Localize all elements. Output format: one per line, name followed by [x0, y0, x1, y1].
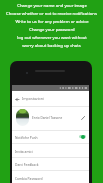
staticText: Choose whether or not to receive notific…: [6, 11, 97, 17]
button[interactable]: Invita amici: [12, 144, 89, 157]
button[interactable]: Cambia Password: [12, 171, 89, 183]
button[interactable]: Toggle push notifications: [78, 134, 86, 139]
staticText: Invita amici: [15, 149, 33, 153]
staticText: Impostazioni: [22, 96, 44, 101]
button[interactable]: Back: [13, 95, 21, 103]
staticText: log out whenever you want without: [17, 35, 87, 41]
button[interactable]: Edit profile: [79, 114, 87, 122]
staticText: Enrio Daniel Tassone: [32, 116, 63, 120]
staticText: Change your name and your image: [17, 3, 87, 9]
staticText: Change your password: [29, 27, 75, 33]
staticText: Notifiche Push: [15, 135, 38, 139]
button[interactable]: Darci Feedback: [12, 157, 89, 170]
staticText: Darci Feedback: [15, 162, 39, 166]
staticText: worry about backing up chats: [22, 43, 81, 49]
staticText: Cambia Password: [15, 176, 43, 180]
button[interactable]: Notifiche Push: [12, 130, 89, 143]
button[interactable]: Enrio Daniel Tassone: [12, 106, 89, 129]
staticText: Write to us for any problem or advice: [15, 19, 89, 25]
